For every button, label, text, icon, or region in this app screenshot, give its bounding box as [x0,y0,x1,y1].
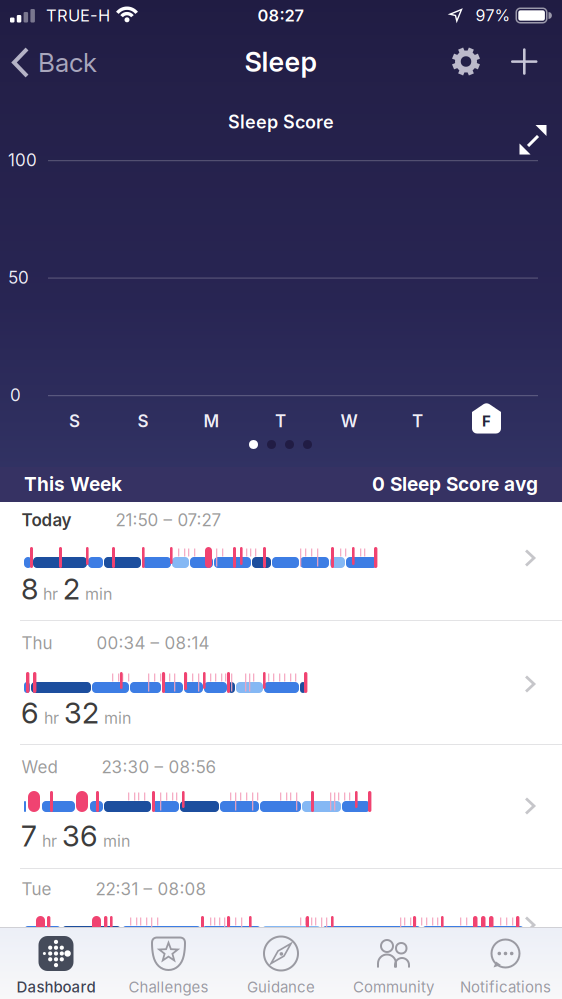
staticText: T [412,411,423,431]
staticText: Challenges [128,978,208,996]
staticText: min [85,584,112,604]
staticText: 8 [21,571,38,607]
staticText: 0 Sleep Score avg [372,472,538,495]
staticText: 22:31 – 08:08 [95,879,206,899]
staticText: Thu [21,633,52,653]
staticText: Tue [21,879,51,899]
staticText: Community [353,978,434,996]
staticText: 08:27 [257,5,304,25]
staticText: hr [43,584,58,604]
staticText: hr [42,980,57,999]
staticText: hr [44,708,59,728]
staticText: Notifications [460,978,551,996]
staticText: This Week [24,472,122,495]
staticText: S [69,411,80,431]
staticText: M [203,411,219,431]
staticText: W [340,411,357,431]
staticText: S [137,411,148,431]
staticText: 23:30 – 08:56 [101,757,216,777]
staticText: Back [38,47,97,78]
staticText: 97% [475,6,510,25]
staticText: F [482,412,491,430]
staticText: hr [42,831,57,851]
staticText: Dashboard [16,978,95,996]
staticText: Today [21,510,71,530]
staticText: min [104,708,131,728]
staticText: 00:34 – 08:14 [96,633,209,653]
staticText: min [85,980,112,999]
staticText: Sleep [244,46,317,78]
staticText: 32 [64,695,99,731]
staticText: TRUE-H [46,5,110,25]
staticText: 0 [10,385,21,405]
staticText: 21:50 – 07:27 [115,510,221,530]
staticText: 7 [21,967,37,999]
staticText: 6 [21,695,39,731]
staticText: 36 [62,818,98,854]
staticText: 0 [62,967,80,999]
staticText: 50 [8,267,29,288]
staticText: 100 [8,150,37,170]
staticText: 2 [63,571,80,607]
staticText: min [103,831,130,851]
staticText: Guidance [247,978,315,996]
staticText: Wed [21,757,57,777]
staticText: Sleep Score [228,111,334,133]
staticText: 7 [21,818,37,854]
staticText: T [275,411,286,431]
